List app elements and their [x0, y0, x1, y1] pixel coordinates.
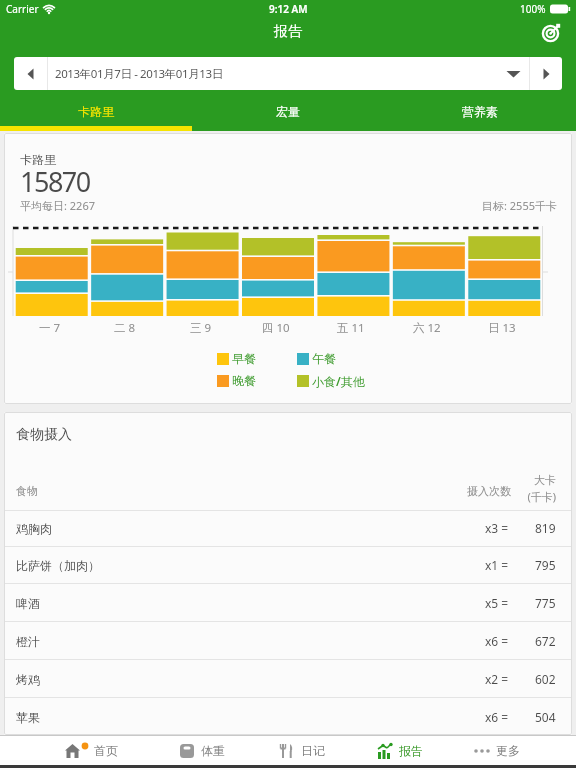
staticText: 四 10 — [262, 320, 290, 336]
button[interactable]: 卡路里 — [0, 96, 192, 126]
staticText: 六 12 — [413, 320, 441, 336]
staticText: 早餐 — [232, 351, 256, 366]
staticText: 目标: 2555千卡 — [482, 198, 557, 213]
staticText: 100% — [520, 2, 546, 16]
staticText: 15870 — [20, 163, 90, 200]
staticText: 日记 — [301, 743, 325, 758]
staticText: 一 7 — [39, 320, 61, 336]
staticText: 首页 — [94, 743, 118, 758]
staticText: 体重 — [201, 743, 225, 758]
staticText: 烤鸡 — [16, 672, 40, 687]
button[interactable]: 烤鸡 — [4, 660, 572, 698]
staticText: 672 — [535, 633, 556, 649]
button[interactable] — [540, 20, 564, 44]
staticText: 午餐 — [312, 351, 336, 366]
staticText: 775 — [535, 595, 556, 611]
button[interactable]: 体重 — [178, 736, 225, 765]
button[interactable]: 更多 — [473, 736, 520, 765]
staticText: 宏量 — [276, 104, 300, 119]
staticText: 橙汁 — [16, 634, 40, 649]
button[interactable]: 橙汁 — [4, 622, 572, 660]
button[interactable]: 比萨饼（加肉） — [4, 546, 572, 584]
staticText: 602 — [535, 671, 556, 687]
staticText: 日 13 — [488, 320, 516, 336]
staticText: x3 = — [485, 520, 509, 536]
staticText: 更多 — [496, 743, 520, 758]
staticText: 小食/其他 — [312, 373, 365, 389]
staticText: Carrier — [6, 2, 39, 16]
staticText: x6 = — [485, 709, 509, 725]
button[interactable]: 啤酒 — [4, 584, 572, 622]
staticText: 食物摄入 — [16, 426, 72, 444]
staticText: 五 11 — [337, 320, 365, 336]
staticText: 504 — [535, 709, 556, 725]
staticText: 大卡 (千卡) — [527, 473, 556, 504]
button[interactable]: 首页 — [64, 736, 118, 765]
staticText: 819 — [535, 520, 556, 536]
button[interactable]: 鸡胸肉 — [4, 509, 572, 547]
staticText: 卡路里 — [78, 104, 114, 119]
button[interactable]: 2013年01月7日 - 2013年01月13日 — [48, 57, 529, 90]
staticText: 三 9 — [190, 320, 212, 336]
staticText: 鸡胸肉 — [16, 521, 52, 536]
staticText: 卡路里 — [20, 152, 56, 167]
button[interactable]: 宏量 — [192, 96, 384, 126]
button[interactable]: 苹果 — [4, 698, 572, 735]
button[interactable]: 营养素 — [384, 96, 576, 126]
button[interactable] — [14, 57, 47, 90]
staticText: 二 8 — [114, 320, 136, 336]
staticText: 啤酒 — [16, 596, 40, 611]
staticText: 苹果 — [16, 710, 40, 725]
staticText: 795 — [535, 557, 556, 573]
staticText: 摄入次数 — [467, 484, 511, 498]
staticText: 报告 — [274, 23, 302, 41]
staticText: x5 = — [485, 595, 509, 611]
staticText: x2 = — [485, 671, 509, 687]
staticText: x1 = — [485, 557, 509, 573]
staticText: x6 = — [485, 633, 509, 649]
staticText: 平均每日: 2267 — [20, 198, 95, 213]
staticText: 晚餐 — [232, 373, 256, 388]
button[interactable] — [530, 57, 562, 90]
staticText: 营养素 — [462, 104, 498, 119]
staticText: 9:12 AM — [269, 2, 308, 16]
button[interactable]: 日记 — [278, 736, 325, 765]
button[interactable]: 报告 — [376, 736, 423, 765]
staticText: 报告 — [399, 743, 423, 758]
staticText: 2013年01月7日 - 2013年01月13日 — [55, 66, 223, 82]
staticText: 比萨饼（加肉） — [16, 558, 100, 573]
staticText: 食物 — [16, 484, 38, 498]
